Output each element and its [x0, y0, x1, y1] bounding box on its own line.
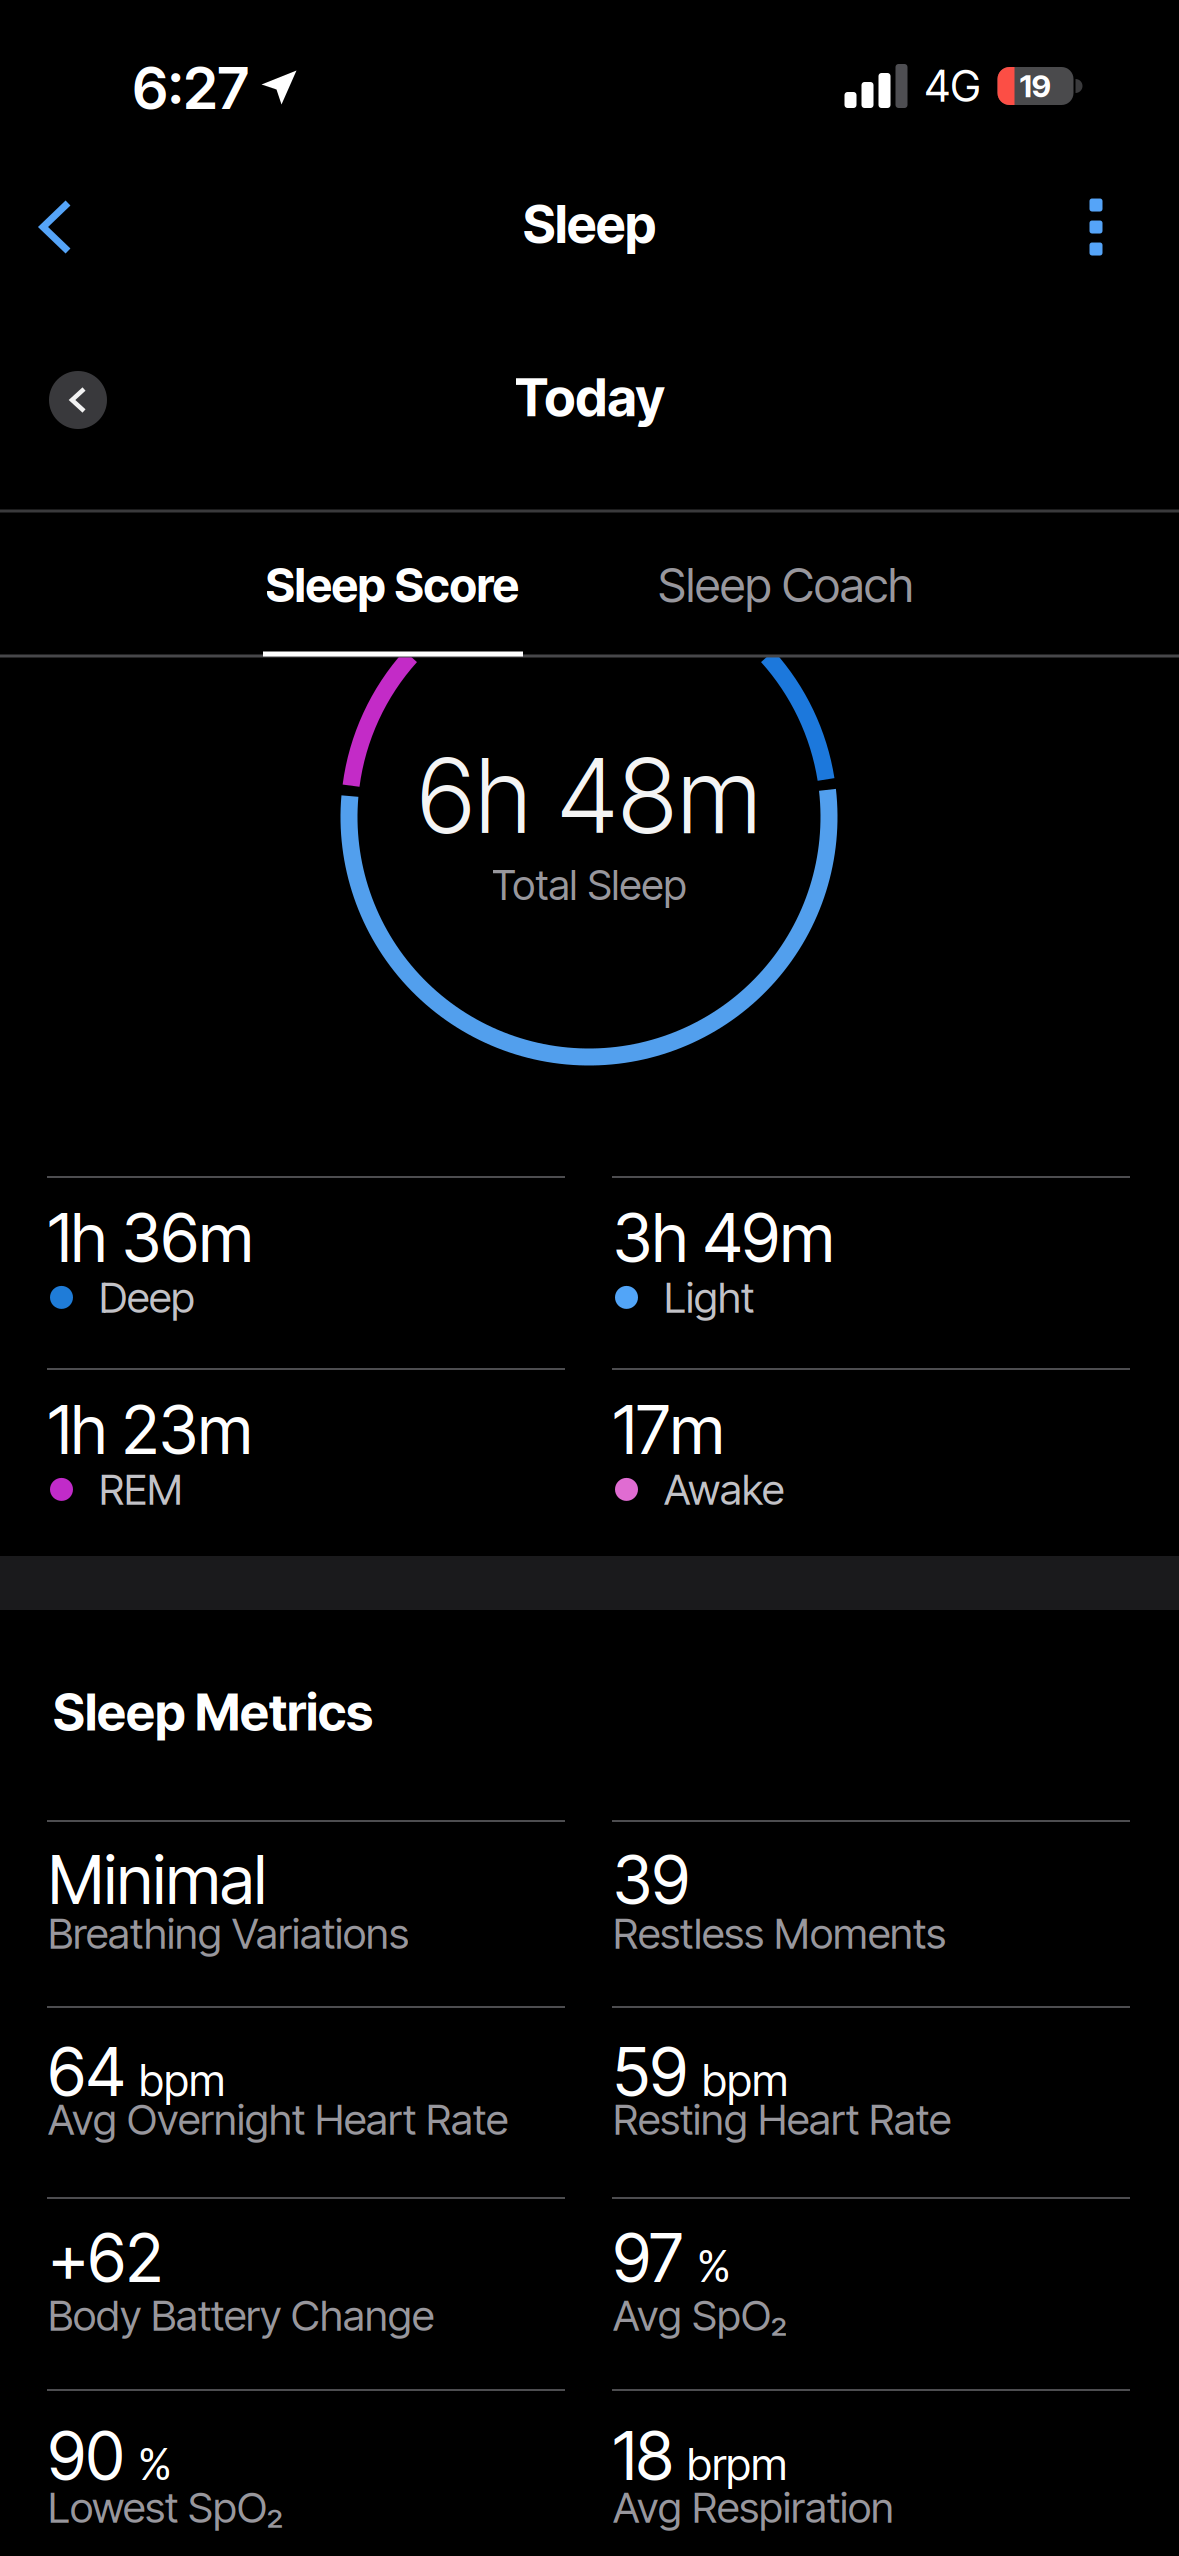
staticText: +62	[48, 2218, 163, 2298]
staticText: Awake	[664, 1464, 784, 1515]
staticText: Sleep Score	[265, 557, 518, 613]
staticText: Sleep Coach	[658, 557, 914, 613]
button[interactable]: Back	[0, 172, 116, 282]
staticText: 3h 49m	[613, 1198, 834, 1278]
staticText: %	[138, 2437, 172, 2490]
staticText: 6h 48m	[417, 734, 761, 858]
staticText: Body Battery Change	[48, 2290, 434, 2341]
staticText: Avg Overnight Heart Rate	[48, 2094, 508, 2145]
button[interactable]: Sleep Score	[235, 531, 548, 639]
staticText: 64	[48, 2032, 125, 2112]
staticText: Sleep	[523, 192, 656, 255]
staticText: 6:27	[132, 53, 248, 123]
button[interactable]: Previous day	[35, 357, 121, 443]
staticText: Sleep Metrics	[53, 1681, 373, 1743]
staticText: Resting Heart Rate	[613, 2094, 951, 2145]
staticText: Light	[664, 1272, 754, 1323]
staticText: Avg Respiration	[613, 2482, 894, 2533]
staticText: Restless Moments	[613, 1908, 946, 1959]
staticText: 90	[48, 2416, 124, 2496]
staticText: %	[697, 2239, 731, 2292]
staticText: 1h 23m	[48, 1390, 252, 1470]
staticText: 39	[613, 1840, 690, 1920]
staticText: bpm	[139, 2053, 225, 2106]
staticText: 19	[1019, 67, 1051, 105]
staticText: 97	[613, 2218, 683, 2298]
staticText: 59	[613, 2032, 688, 2112]
button[interactable]: More options	[1053, 170, 1138, 283]
staticText: bpm	[702, 2053, 788, 2106]
staticText: 1h 36m	[48, 1198, 253, 1278]
staticText: 17m	[613, 1390, 724, 1470]
staticText: REM	[99, 1464, 183, 1515]
staticText: Deep	[99, 1272, 195, 1323]
staticText: 18	[613, 2416, 673, 2496]
staticText: Total Sleep	[491, 860, 686, 910]
staticText: Avg SpO₂	[613, 2290, 787, 2341]
staticText: Breathing Variations	[48, 1908, 409, 1959]
staticText: brpm	[687, 2437, 787, 2490]
staticText: 4G	[924, 60, 980, 112]
staticText: Minimal	[48, 1840, 267, 1920]
staticText: Today	[514, 365, 664, 429]
button[interactable]: Sleep Coach	[628, 531, 944, 639]
staticText: Lowest SpO₂	[48, 2482, 283, 2533]
